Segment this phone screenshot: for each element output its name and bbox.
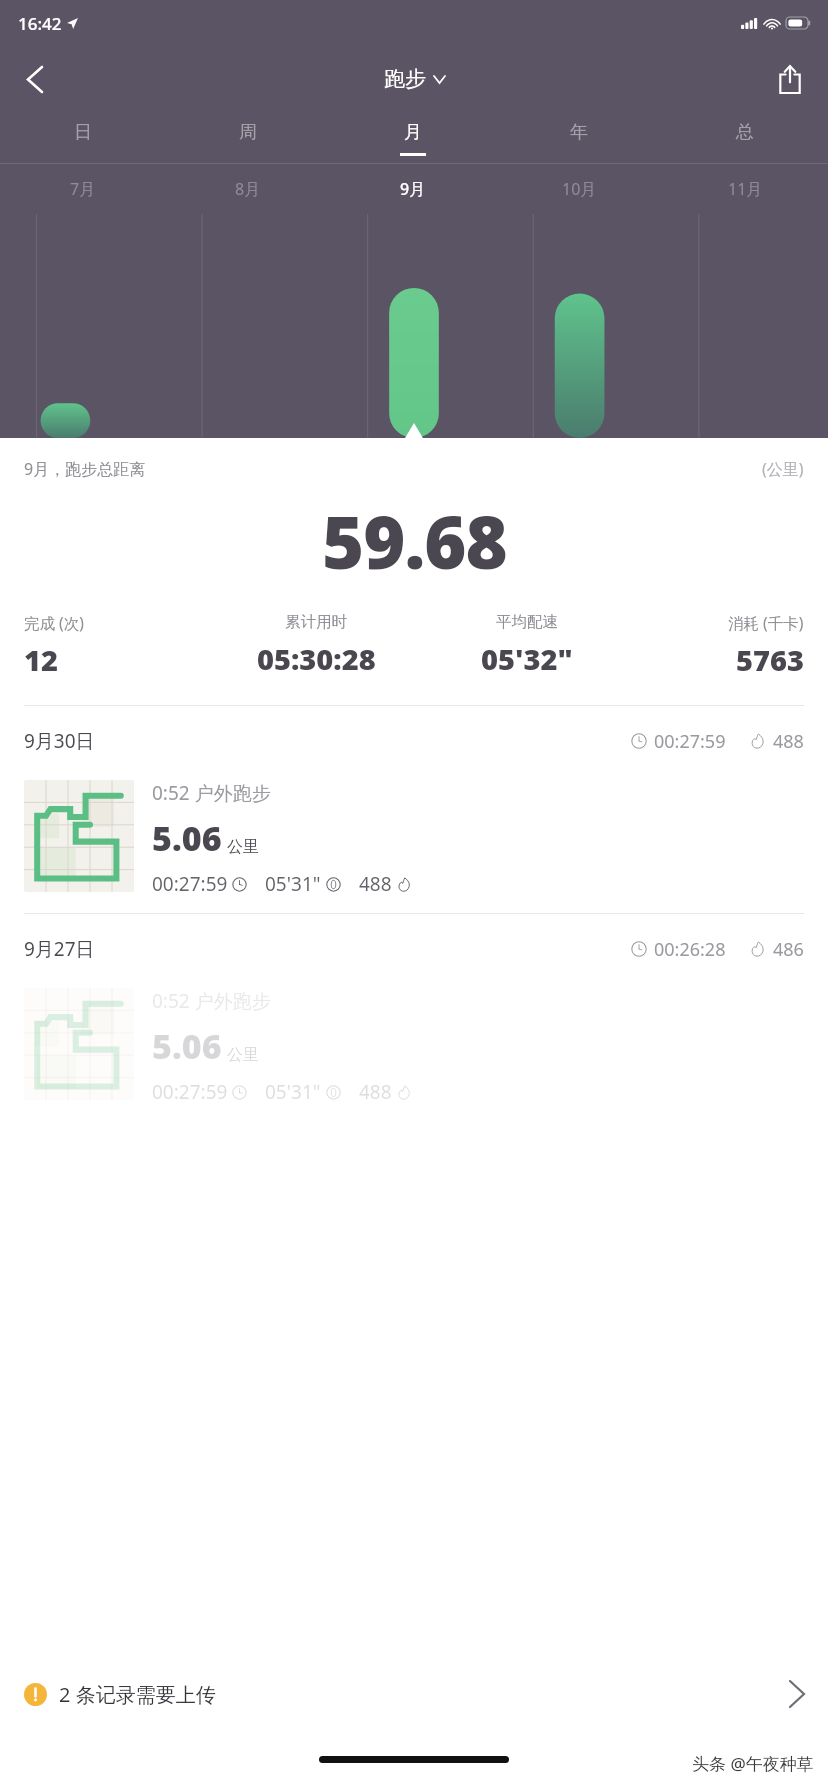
button[interactable]: 周 — [165, 112, 330, 164]
staticText: 00:26:28 — [654, 937, 726, 962]
staticText: 05'31" — [265, 1079, 321, 1105]
staticText: 486 — [773, 937, 804, 962]
staticText: (公里) — [762, 458, 804, 480]
staticText: 05:30:28 — [257, 639, 376, 678]
staticText: 00:27:59 — [152, 1079, 228, 1105]
button[interactable]: 0:52 户外跑步 — [0, 776, 828, 913]
staticText: 10月 — [562, 178, 597, 200]
staticText: 5763 — [736, 640, 804, 679]
staticText: 488 — [359, 871, 392, 897]
staticText: 完成 (次) — [24, 612, 84, 633]
staticText: 00:27:59 — [152, 871, 228, 897]
staticText: 跑步 — [384, 66, 426, 92]
staticText: 0:52 户外跑步 — [152, 988, 271, 1014]
staticText: 9月30日 — [24, 728, 95, 754]
staticText: 16:42 — [18, 12, 62, 35]
staticText: 11月 — [728, 178, 763, 200]
staticText: 488 — [773, 729, 804, 754]
staticText: 488 — [359, 1079, 392, 1105]
button[interactable]: 月 — [330, 112, 496, 164]
staticText: 平均配速 — [496, 612, 558, 632]
button[interactable]: 2 条记录需要上传 — [0, 1654, 828, 1734]
button[interactable]: Share — [764, 53, 816, 105]
staticText: 5.06 — [152, 1023, 222, 1069]
staticText: 05'32" — [481, 639, 573, 678]
button[interactable]: 日 — [0, 112, 165, 164]
staticText: 累计用时 — [285, 612, 347, 632]
button[interactable]: 0:52 户外跑步 — [0, 984, 828, 1121]
button[interactable]: 9月30日 — [0, 706, 828, 776]
staticText: 周 — [239, 121, 257, 144]
staticText: 月 — [404, 121, 422, 144]
staticText: 总 — [736, 121, 754, 144]
staticText: 5.06 — [152, 815, 222, 861]
button[interactable]: 年 — [496, 112, 662, 164]
staticText: 公里 — [227, 837, 259, 857]
staticText: 0:52 户外跑步 — [152, 780, 271, 806]
staticText: 7月 — [70, 178, 96, 200]
staticText: 05'31" — [265, 871, 321, 897]
staticText: 公里 — [227, 1045, 259, 1065]
button[interactable]: Back — [8, 52, 62, 106]
staticText: 头条 @午夜种草 — [692, 1752, 814, 1775]
staticText: 年 — [570, 121, 588, 144]
button[interactable]: 跑步 — [374, 60, 455, 98]
staticText: 日 — [74, 121, 92, 144]
staticText: 2 条记录需要上传 — [59, 1681, 216, 1708]
staticText: 12 — [24, 640, 58, 679]
staticText: 9月 — [400, 178, 426, 200]
staticText: 8月 — [235, 178, 261, 200]
button[interactable]: 9月27日 — [0, 914, 828, 984]
staticText: 59.68 — [322, 492, 507, 590]
staticText: 9月，跑步总距离 — [24, 458, 146, 480]
staticText: 00:27:59 — [654, 729, 726, 754]
button[interactable]: 总 — [662, 112, 828, 164]
staticText: 9月27日 — [24, 936, 95, 962]
staticText: 消耗 (千卡) — [728, 612, 804, 633]
